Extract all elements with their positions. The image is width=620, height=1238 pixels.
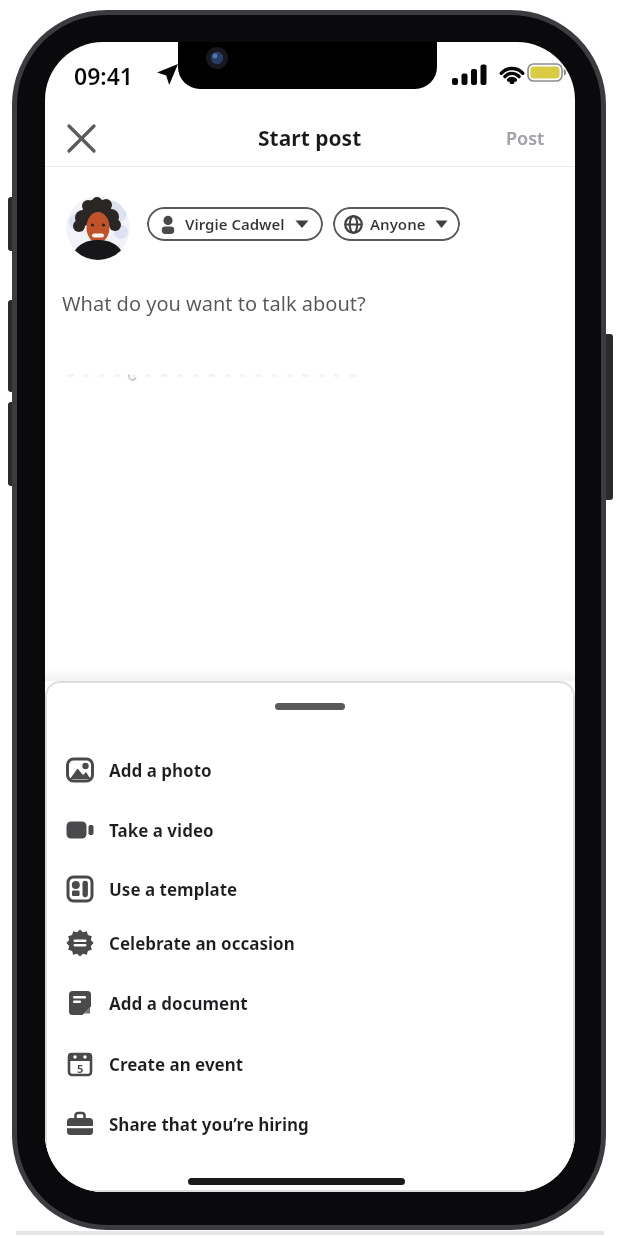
staticText: 5	[77, 1061, 84, 1076]
staticText: Share that you’re hiring	[109, 1113, 309, 1136]
staticText: Post	[506, 126, 545, 151]
button[interactable]: Add a document	[66, 982, 575, 1024]
button[interactable]: 5	[66, 1043, 575, 1085]
staticText: Create an event	[109, 1053, 244, 1076]
staticText: Anyone	[370, 214, 426, 234]
button[interactable]: Anyone	[333, 207, 460, 241]
button[interactable]: Share that you’re hiring	[66, 1103, 575, 1145]
staticText: Celebrate an occasion	[109, 932, 295, 955]
staticText: Take a video	[109, 819, 214, 842]
button[interactable]	[63, 120, 99, 156]
button[interactable]: Virgie Cadwel	[147, 207, 323, 241]
button[interactable]: Add a photo	[66, 749, 575, 791]
staticText: What do you want to talk about?	[62, 290, 366, 317]
staticText: Use a template	[109, 878, 238, 901]
staticText: Add a document	[109, 992, 248, 1015]
staticText: Add a photo	[109, 759, 212, 782]
staticText: Start post	[258, 124, 362, 153]
button[interactable]: Celebrate an occasion	[66, 922, 575, 964]
button[interactable]: Use a template	[66, 868, 575, 910]
button[interactable]: What do you want to talk about?	[62, 290, 575, 330]
button[interactable]: Take a video	[66, 809, 575, 851]
button[interactable]	[275, 703, 345, 710]
button[interactable]: Post	[495, 122, 555, 154]
staticText: 09:41	[74, 60, 133, 91]
staticText: Virgie Cadwel	[185, 214, 285, 234]
